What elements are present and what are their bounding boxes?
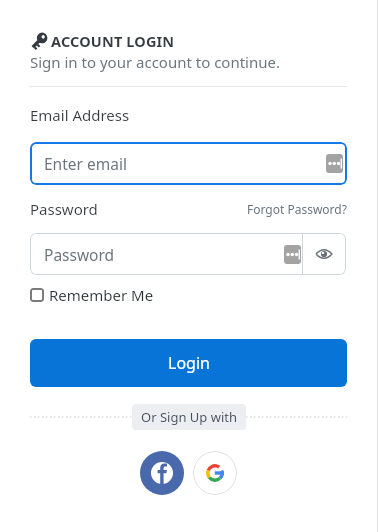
staticText: ACCOUNT LOGIN: [51, 31, 175, 51]
button[interactable]: [193, 451, 237, 495]
staticText: Enter email: [44, 153, 127, 174]
button[interactable]: [140, 451, 184, 495]
staticText: Password: [30, 199, 98, 219]
staticText: Login: [168, 352, 210, 374]
staticText: Or Sign Up with: [141, 408, 237, 426]
staticText: Email Address: [30, 105, 130, 125]
button[interactable]: [302, 233, 346, 275]
button[interactable]: Enter email: [30, 142, 347, 185]
staticText: Password: [44, 244, 115, 265]
button[interactable]: Forgot Password?: [247, 201, 347, 217]
staticText: Sign in to your account to continue.: [30, 52, 281, 72]
staticText: Remember Me: [49, 285, 154, 305]
button[interactable]: Remember Me: [30, 285, 154, 305]
button[interactable]: Login: [30, 339, 347, 387]
button[interactable]: Password: [30, 233, 303, 275]
